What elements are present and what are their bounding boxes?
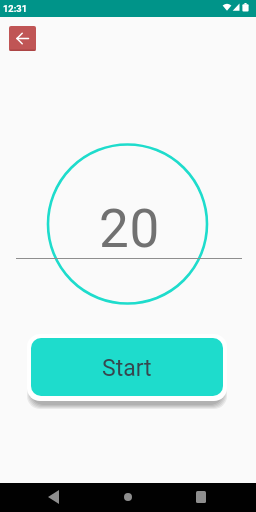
- staticText: 12:31: [3, 3, 27, 14]
- button[interactable]: [32, 483, 76, 512]
- button[interactable]: [9, 26, 36, 51]
- staticText: Start: [102, 355, 152, 382]
- button[interactable]: [179, 483, 223, 512]
- button[interactable]: Start: [31, 338, 223, 396]
- staticText: 20: [99, 198, 160, 260]
- button[interactable]: [105, 483, 149, 512]
